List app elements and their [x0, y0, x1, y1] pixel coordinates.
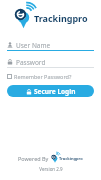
staticText: Password: [16, 58, 46, 67]
staticText: Powered By: [18, 155, 49, 162]
button[interactable]: Remember Password?: [7, 73, 94, 80]
staticText: Secure Login: [34, 87, 76, 96]
button[interactable]: Secure Login: [7, 85, 94, 97]
staticText: User Name: [16, 41, 51, 50]
other: Trackingpro logo: [14, 7, 88, 29]
staticText: Remember Password?: [14, 73, 72, 80]
staticText: Trackingpro: [34, 12, 88, 24]
button[interactable]: Password: [7, 57, 94, 67]
staticText: Trackingpro: [59, 156, 83, 161]
button[interactable]: User Name: [7, 40, 94, 50]
staticText: Version 2.9: [39, 166, 63, 172]
